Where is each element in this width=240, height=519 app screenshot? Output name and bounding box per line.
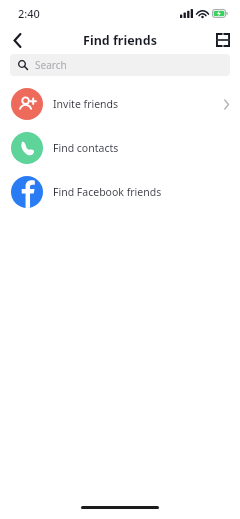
button[interactable]: Invite friends [0, 82, 240, 126]
button[interactable]: Scan QR code [206, 26, 240, 54]
staticText: Find friends [83, 32, 157, 49]
staticText: 2:40 [18, 6, 40, 21]
button[interactable]: Search [10, 54, 230, 76]
staticText: Invite friends [53, 97, 224, 111]
staticText: Search [35, 58, 67, 72]
button[interactable]: Find contacts [0, 126, 240, 170]
button[interactable]: Find Facebook friends [0, 170, 240, 214]
staticText: Find Facebook friends [53, 185, 229, 199]
button[interactable]: Back [0, 26, 34, 54]
staticText: Find contacts [53, 141, 229, 155]
